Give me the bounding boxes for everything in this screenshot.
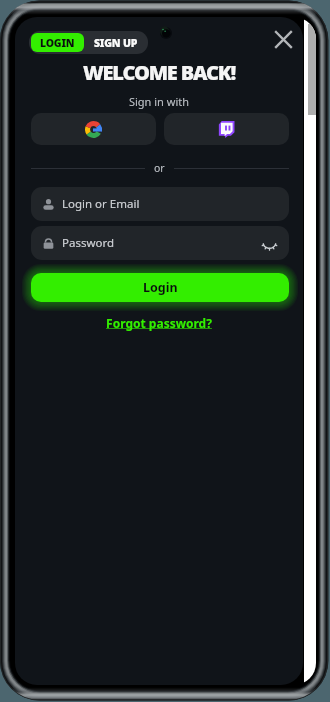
button[interactable]: LOGIN — [31, 33, 84, 52]
button[interactable]: Forgot password? — [15, 315, 303, 331]
staticText: SIGN UP — [94, 36, 138, 50]
staticText: Login or Email — [62, 196, 140, 212]
button[interactable]: Login — [31, 273, 289, 302]
button[interactable]: Sign in with Google — [31, 113, 156, 145]
button[interactable]: Login or Email — [31, 187, 289, 221]
staticText: Sign in with — [15, 94, 303, 109]
staticText: LOGIN — [40, 36, 75, 50]
staticText: WELCOME BACK! — [15, 59, 303, 86]
button[interactable]: Password — [31, 226, 289, 260]
staticText: Login — [143, 279, 178, 296]
button[interactable]: Close — [270, 26, 296, 52]
staticText: Password — [62, 235, 115, 251]
button[interactable]: Sign in with Twitch — [164, 113, 289, 145]
button[interactable]: Show password — [262, 236, 277, 251]
button[interactable]: SIGN UP — [86, 31, 148, 54]
staticText: or — [154, 161, 165, 175]
